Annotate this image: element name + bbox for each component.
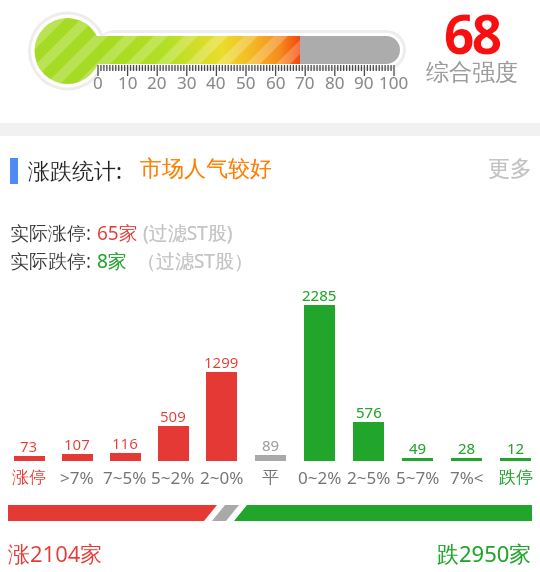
staticText: 8家 xyxy=(97,248,127,274)
staticText: 7%< xyxy=(450,466,484,489)
staticText: 0~2% xyxy=(298,466,342,489)
staticText: 116 xyxy=(112,433,138,453)
staticText: 5~2% xyxy=(151,466,195,489)
staticText: 90 xyxy=(354,71,374,94)
staticText: 576 xyxy=(356,402,382,422)
staticText: 20 xyxy=(147,71,167,94)
staticText: 2~0% xyxy=(200,466,244,489)
staticText: 80 xyxy=(325,71,345,94)
staticText: 7~5% xyxy=(103,466,147,489)
staticText: 更多 xyxy=(488,155,532,183)
staticText: 市场人气较好 xyxy=(140,155,272,183)
staticText: 50 xyxy=(236,71,256,94)
staticText: 107 xyxy=(64,434,90,454)
staticText: >7% xyxy=(60,466,94,489)
staticText: 100 xyxy=(379,71,409,94)
staticText: (过滤ST股) xyxy=(138,220,233,246)
staticText: 40 xyxy=(206,71,226,94)
staticText: 68 xyxy=(444,0,500,69)
staticText: 60 xyxy=(266,71,286,94)
button[interactable]: 更多 xyxy=(480,153,540,185)
staticText: 12 xyxy=(507,438,525,458)
staticText: 1299 xyxy=(204,352,239,372)
staticText: （过滤ST股） xyxy=(127,248,253,274)
staticText: 65家 xyxy=(97,220,138,246)
staticText: 跌2950家 xyxy=(437,538,532,568)
staticText: 综合强度 xyxy=(426,58,518,87)
staticText: 30 xyxy=(177,71,197,94)
staticText: 实际跌停: xyxy=(10,248,97,274)
staticText: 涨停 xyxy=(12,467,46,488)
staticText: 28 xyxy=(458,438,476,458)
staticText: 49 xyxy=(409,438,427,458)
staticText: 0 xyxy=(93,71,103,94)
staticText: 涨跌统计: xyxy=(28,155,140,185)
staticText: 平 xyxy=(262,467,279,488)
staticText: 涨2104家 xyxy=(8,538,103,568)
staticText: 实际涨停: xyxy=(10,220,97,246)
staticText: 509 xyxy=(160,406,186,426)
staticText: 10 xyxy=(118,71,138,94)
staticText: 2285 xyxy=(302,285,337,305)
staticText: 跌停 xyxy=(499,467,533,488)
staticText: 73 xyxy=(20,436,38,456)
staticText: 89 xyxy=(262,435,280,455)
staticText: 5~7% xyxy=(396,466,440,489)
staticText: 2~5% xyxy=(347,466,391,489)
staticText: 70 xyxy=(295,71,315,94)
